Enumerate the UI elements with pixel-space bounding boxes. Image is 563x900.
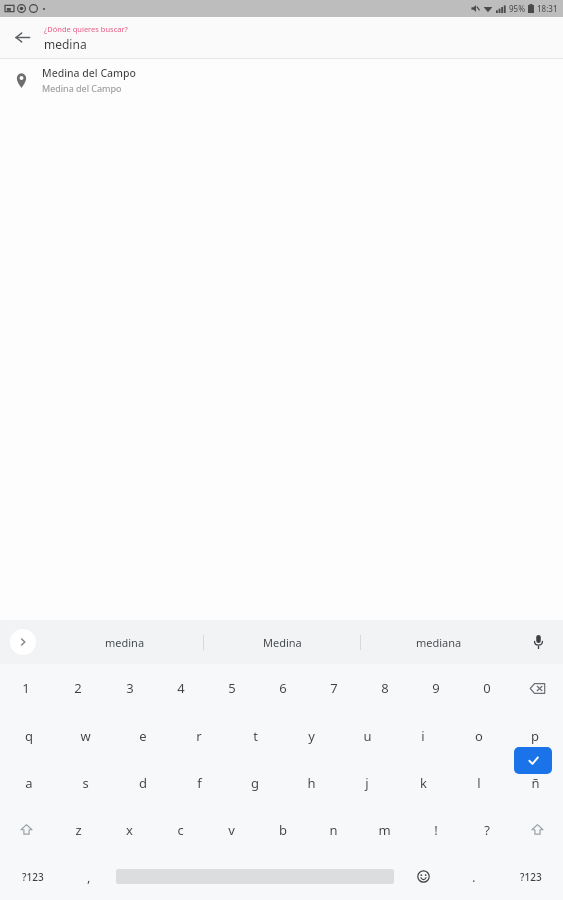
- button[interactable]: ?123: [0, 853, 65, 900]
- staticText: 5: [228, 679, 236, 697]
- staticText: c: [177, 821, 184, 839]
- button[interactable]: Voice input: [523, 627, 553, 657]
- button[interactable]: p: [507, 712, 563, 759]
- button[interactable]: ,: [65, 853, 113, 900]
- staticText: ?123: [520, 870, 542, 884]
- staticText: 8: [381, 679, 389, 697]
- staticText: 3: [126, 679, 134, 697]
- staticText: ¿Dónde quieres buscar?: [44, 24, 128, 34]
- button[interactable]: i: [395, 712, 451, 759]
- staticText: 4: [177, 679, 185, 697]
- button[interactable]: z: [52, 806, 104, 853]
- button[interactable]: Shift: [512, 806, 563, 853]
- staticText: n: [329, 821, 338, 839]
- staticText: p: [531, 727, 539, 745]
- button[interactable]: 2: [52, 664, 104, 712]
- button[interactable]: ?123: [498, 853, 563, 900]
- staticText: y: [308, 727, 315, 745]
- button[interactable]: Medina: [204, 620, 360, 664]
- button[interactable]: 7: [308, 664, 359, 712]
- staticText: w: [80, 727, 91, 745]
- button[interactable]: r: [171, 712, 227, 759]
- staticText: Medina: [263, 635, 302, 650]
- staticText: mediana: [416, 635, 462, 650]
- staticText: b: [279, 821, 287, 839]
- button[interactable]: 0: [461, 664, 512, 712]
- button[interactable]: d: [114, 759, 171, 806]
- button[interactable]: o: [451, 712, 507, 759]
- button[interactable]: ?: [461, 806, 512, 853]
- staticText: q: [25, 727, 33, 745]
- button[interactable]: medina: [46, 620, 203, 664]
- button[interactable]: 4: [155, 664, 206, 712]
- staticText: a: [25, 774, 33, 792]
- staticText: 1: [22, 679, 30, 697]
- button[interactable]: n: [308, 806, 359, 853]
- button[interactable]: v: [206, 806, 257, 853]
- button[interactable]: l: [451, 759, 507, 806]
- staticText: t: [253, 727, 258, 745]
- button[interactable]: w: [57, 712, 114, 759]
- button[interactable]: m: [359, 806, 410, 853]
- staticText: 9: [432, 679, 440, 697]
- button[interactable]: Emoji: [397, 853, 450, 900]
- staticText: v: [228, 821, 235, 839]
- staticText: h: [307, 774, 316, 792]
- staticText: .: [472, 868, 476, 886]
- staticText: r: [196, 727, 202, 745]
- button[interactable]: Medina del Campo: [0, 59, 563, 101]
- staticText: !: [434, 821, 438, 839]
- staticText: z: [75, 821, 82, 839]
- staticText: l: [477, 774, 481, 792]
- button[interactable]: Backspace: [512, 664, 563, 712]
- button[interactable]: ¿Dónde quieres buscar?: [44, 24, 563, 52]
- staticText: s: [82, 774, 89, 792]
- staticText: 18:31: [537, 3, 558, 14]
- staticText: ?: [484, 821, 490, 839]
- button[interactable]: y: [283, 712, 339, 759]
- button[interactable]: x: [104, 806, 155, 853]
- button[interactable]: e: [114, 712, 171, 759]
- button[interactable]: j: [339, 759, 395, 806]
- button[interactable]: b: [257, 806, 308, 853]
- staticText: ñ: [531, 774, 540, 792]
- button[interactable]: 8: [359, 664, 410, 712]
- staticText: i: [421, 727, 425, 745]
- button[interactable]: s: [57, 759, 114, 806]
- button[interactable]: 5: [206, 664, 257, 712]
- button[interactable]: 9: [410, 664, 461, 712]
- button[interactable]: t: [227, 712, 283, 759]
- staticText: Medina del Campo: [42, 82, 122, 94]
- button[interactable]: c: [155, 806, 206, 853]
- button[interactable]: mediana: [361, 620, 517, 664]
- button[interactable]: f: [171, 759, 227, 806]
- button[interactable]: Shift: [0, 806, 52, 853]
- staticText: 0: [483, 679, 491, 697]
- staticText: m: [378, 821, 391, 839]
- button[interactable]: .: [450, 853, 498, 900]
- button[interactable]: Back: [0, 17, 44, 58]
- button[interactable]: h: [283, 759, 339, 806]
- staticText: medina: [105, 635, 145, 650]
- staticText: j: [365, 774, 369, 792]
- button[interactable]: k: [395, 759, 451, 806]
- button[interactable]: q: [0, 712, 57, 759]
- button[interactable]: 6: [257, 664, 308, 712]
- button[interactable]: g: [227, 759, 283, 806]
- button[interactable]: ñ: [507, 759, 563, 806]
- button[interactable]: 1: [0, 664, 52, 712]
- button[interactable]: a: [0, 759, 57, 806]
- button[interactable]: Enter: [514, 747, 552, 774]
- button[interactable]: More suggestions: [10, 629, 36, 655]
- staticText: 95%: [509, 3, 525, 14]
- button[interactable]: u: [339, 712, 395, 759]
- staticText: x: [126, 821, 133, 839]
- staticText: k: [420, 774, 427, 792]
- button[interactable]: 3: [104, 664, 155, 712]
- button[interactable]: !: [410, 806, 461, 853]
- button[interactable]: Space: [116, 865, 394, 888]
- staticText: 7: [330, 679, 338, 697]
- staticText: ?123: [22, 870, 44, 884]
- staticText: 6: [279, 679, 287, 697]
- staticText: f: [197, 774, 202, 792]
